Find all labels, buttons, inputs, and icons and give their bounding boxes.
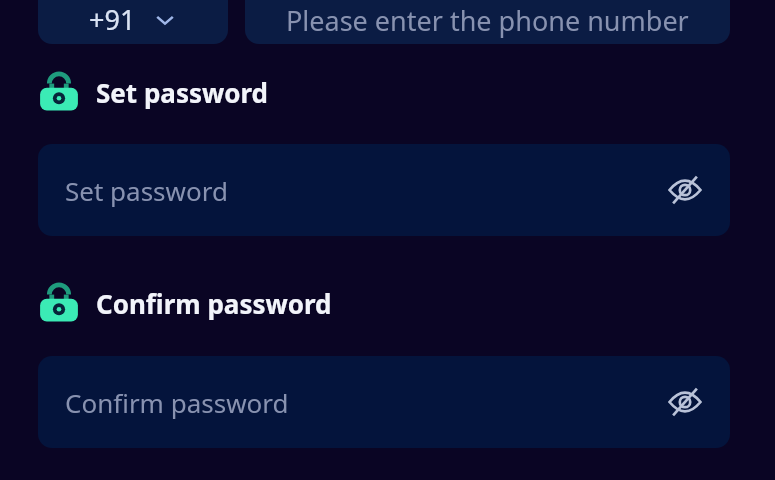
button[interactable]: Confirm password	[38, 356, 730, 448]
button[interactable]: Confirm password	[38, 281, 340, 325]
staticText: Confirm password	[65, 385, 289, 420]
button[interactable]: Please enter the phone number	[245, 0, 730, 44]
staticText: Please enter the phone number	[286, 2, 689, 39]
button[interactable]: Set password	[38, 144, 730, 236]
button[interactable]: Show confirm password	[663, 380, 707, 424]
staticText: Set password	[96, 75, 269, 110]
button[interactable]: +91	[38, 0, 228, 44]
staticText: Confirm password	[96, 286, 332, 321]
button[interactable]: Show set password	[663, 168, 707, 212]
staticText: Set password	[65, 173, 228, 208]
staticText: +91	[89, 1, 136, 38]
button[interactable]: Set password	[38, 70, 277, 114]
